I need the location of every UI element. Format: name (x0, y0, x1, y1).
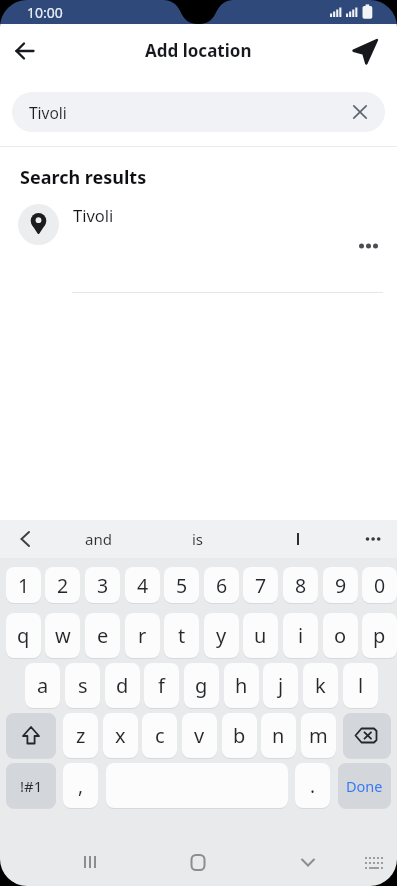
staticText: Add location (145, 39, 252, 62)
button[interactable]: u (243, 613, 278, 658)
staticText: Tivoli (29, 102, 67, 123)
staticText: 6 (216, 572, 228, 599)
button[interactable]: 2 (45, 567, 80, 603)
button[interactable]: !#1 (6, 763, 56, 808)
button[interactable]: h (224, 663, 259, 708)
staticText: v (194, 722, 205, 749)
button[interactable] (6, 31, 44, 69)
staticText: u (254, 622, 267, 649)
staticText: !#1 (20, 776, 43, 796)
button[interactable]: 5 (164, 567, 199, 603)
staticText: Search results (20, 165, 147, 187)
staticText: h (235, 672, 248, 699)
button[interactable]: 8 (283, 567, 318, 603)
staticText: 0 (374, 572, 386, 599)
button[interactable]: e (85, 613, 120, 658)
button[interactable]: 9 (323, 567, 358, 603)
staticText: 4 (137, 572, 149, 599)
button[interactable]: g (184, 663, 219, 708)
button[interactable]: f (144, 663, 179, 708)
button[interactable]: r (125, 613, 160, 658)
button[interactable] (258, 520, 338, 558)
staticText: 10:00 (27, 3, 63, 22)
button[interactable]: q (6, 613, 41, 658)
staticText: r (138, 622, 147, 649)
button[interactable]: b (222, 713, 257, 758)
staticText: 7 (255, 572, 267, 599)
button[interactable]: 3 (85, 567, 120, 603)
staticText: 3 (97, 572, 109, 599)
staticText: 1 (18, 572, 30, 599)
button[interactable] (346, 98, 374, 126)
staticText: Tivoli (73, 204, 114, 226)
button[interactable]: 0 (362, 567, 397, 603)
button[interactable] (343, 713, 391, 758)
button[interactable]: 1 (6, 567, 41, 603)
staticText: d (116, 672, 129, 699)
staticText: y (216, 622, 227, 649)
button[interactable]: p (362, 613, 397, 658)
button[interactable]: k (303, 663, 338, 708)
button[interactable] (286, 844, 330, 880)
button[interactable]: Tivoli (12, 92, 385, 132)
button[interactable]: z (63, 713, 98, 758)
button[interactable]: 7 (243, 567, 278, 603)
button[interactable] (360, 850, 390, 876)
button[interactable]: is (158, 520, 238, 558)
staticText: is (192, 529, 204, 549)
button[interactable]: i (283, 613, 318, 658)
button[interactable]: n (261, 713, 296, 758)
staticText: b (233, 722, 246, 749)
staticText: a (37, 672, 49, 699)
button[interactable]: s (65, 663, 100, 708)
button[interactable]: , (63, 763, 98, 808)
staticText: n (272, 722, 285, 749)
button[interactable] (176, 844, 220, 880)
button[interactable]: a (25, 663, 60, 708)
button[interactable]: . (295, 763, 330, 808)
staticText: q (17, 622, 30, 649)
staticText: 2 (57, 572, 69, 599)
staticText: Done (346, 776, 383, 796)
button[interactable]: c (142, 713, 177, 758)
staticText: k (315, 672, 326, 699)
button[interactable] (68, 844, 112, 880)
staticText: p (373, 622, 386, 649)
staticText: f (158, 672, 165, 699)
staticText: m (309, 722, 328, 749)
button[interactable]: Done (338, 763, 391, 808)
button[interactable]: m (301, 713, 336, 758)
staticText: c (155, 722, 165, 749)
button[interactable]: o (323, 613, 358, 658)
staticText: 5 (176, 572, 188, 599)
button[interactable]: y (204, 613, 239, 658)
button[interactable]: x (103, 713, 138, 758)
button[interactable]: w (45, 613, 80, 658)
staticText: and (85, 529, 112, 549)
button[interactable] (347, 30, 387, 70)
button[interactable]: 4 (125, 567, 160, 603)
button[interactable] (350, 232, 388, 260)
button[interactable] (0, 198, 397, 252)
staticText: o (334, 622, 347, 649)
button[interactable]: and (58, 520, 138, 558)
button[interactable]: j (263, 663, 298, 708)
staticText: x (115, 722, 126, 749)
staticText: . (310, 773, 316, 799)
staticText: s (78, 672, 88, 699)
button[interactable]: v (182, 713, 217, 758)
staticText: e (97, 622, 109, 649)
staticText: 9 (335, 572, 347, 599)
button[interactable] (8, 523, 42, 555)
staticText: w (55, 622, 71, 649)
button[interactable]: 6 (204, 567, 239, 603)
button[interactable] (6, 713, 56, 758)
button[interactable] (356, 523, 390, 555)
staticText: , (78, 773, 84, 799)
button[interactable]: l (343, 663, 378, 708)
button[interactable]: d (105, 663, 140, 708)
staticText: 8 (295, 572, 307, 599)
button[interactable]: t (164, 613, 199, 658)
staticText: g (195, 672, 208, 699)
